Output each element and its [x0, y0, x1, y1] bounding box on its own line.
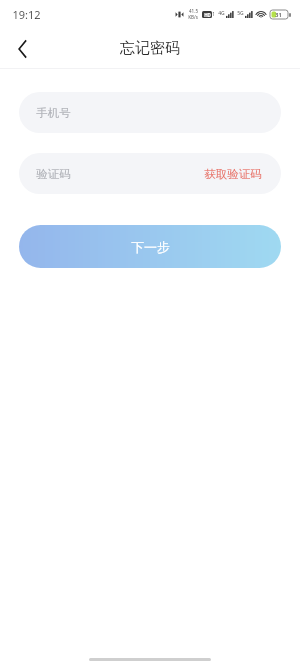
staticText: 41.5 — [189, 8, 198, 14]
staticText: 手机号 — [36, 106, 71, 120]
button[interactable]: 下一步 — [19, 225, 281, 268]
staticText: 5G — [237, 10, 244, 17]
staticText: HD — [204, 12, 211, 18]
staticText: 4G — [218, 10, 225, 17]
button[interactable]: 获取验证码 — [202, 163, 264, 185]
staticText: 下一步 — [131, 239, 170, 255]
button[interactable]: 手机号 — [19, 92, 281, 133]
button[interactable]: 验证码 — [19, 153, 281, 194]
staticText: 1 — [212, 11, 215, 17]
staticText: 验证码 — [36, 167, 71, 181]
staticText: 获取验证码 — [204, 167, 262, 181]
staticText: 31 — [275, 11, 282, 18]
staticText: 忘记密码 — [120, 39, 180, 58]
button[interactable]: Back — [0, 28, 44, 69]
staticText: KB/s — [188, 14, 198, 20]
staticText: 19:12 — [12, 7, 41, 22]
